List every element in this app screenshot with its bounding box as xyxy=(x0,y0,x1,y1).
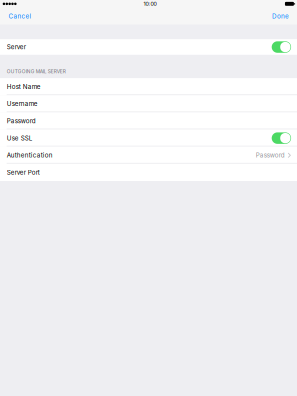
button[interactable]: Server xyxy=(0,39,297,55)
button[interactable]: Done xyxy=(265,8,297,25)
button[interactable]: Host Name xyxy=(0,78,297,95)
staticText: Password xyxy=(256,151,285,159)
staticText: Server xyxy=(7,43,26,51)
button[interactable]: Server Port xyxy=(0,164,297,181)
staticText: Use SSL xyxy=(7,134,33,142)
staticText: Username xyxy=(7,100,38,108)
staticText: Cancel xyxy=(8,12,31,20)
staticText: Server Port xyxy=(7,169,40,176)
button[interactable]: Authentication xyxy=(0,147,297,164)
button[interactable]: Cancel xyxy=(0,8,38,25)
staticText: Host Name xyxy=(7,83,41,90)
staticText: 10:00 xyxy=(143,1,156,7)
staticText: Authentication xyxy=(7,151,53,159)
staticText: Password xyxy=(7,117,36,125)
button[interactable]: Username xyxy=(0,95,297,112)
button[interactable]: Password xyxy=(0,112,297,129)
button[interactable]: Use SSL xyxy=(0,130,297,147)
staticText: Done xyxy=(272,12,289,20)
staticText: OUTGOING MAIL SERVER xyxy=(7,68,66,74)
